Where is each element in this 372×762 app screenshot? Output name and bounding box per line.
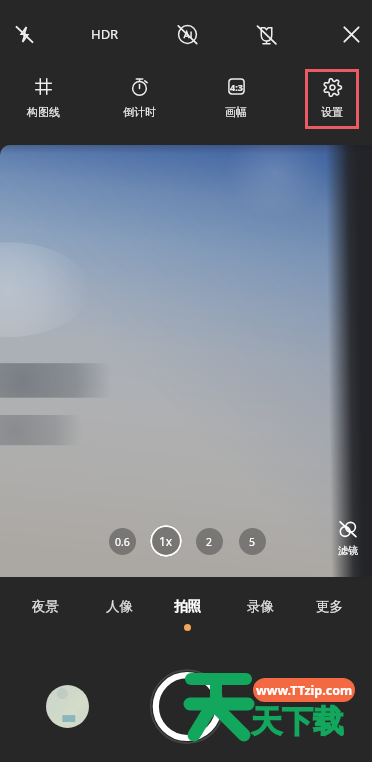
staticText: 更多 [316, 598, 343, 615]
staticText: 夜景 [32, 598, 59, 615]
staticText: 1x [159, 533, 173, 549]
button[interactable]: AI scene off [166, 13, 208, 55]
button[interactable]: 更多 [295, 590, 363, 636]
button[interactable]: Night mode off [245, 13, 287, 55]
button[interactable]: 1x [150, 525, 182, 557]
staticText: 4:3 [230, 81, 243, 93]
button[interactable]: 人像 [85, 590, 153, 636]
staticText: 2 [206, 535, 213, 549]
button[interactable]: Close [330, 13, 372, 55]
button[interactable]: 设置 [305, 69, 359, 129]
staticText: 构图线 [27, 105, 60, 119]
button[interactable]: HDR [75, 18, 135, 50]
button[interactable]: Gallery [46, 685, 89, 728]
staticText: 0.6 [115, 535, 130, 549]
staticText: www.TTzip.com [256, 682, 353, 699]
staticText: 滤镜 [338, 544, 358, 557]
staticText: 设置 [321, 105, 343, 119]
staticText: 倒计时 [123, 105, 156, 119]
staticText: 画幅 [225, 105, 247, 119]
button[interactable]: 构图线 [13, 72, 73, 122]
button[interactable]: 0.6 [109, 528, 136, 555]
button[interactable]: 4:3 [206, 72, 266, 122]
staticText: 天下载 [251, 702, 344, 740]
staticText: HDR [91, 25, 119, 43]
button[interactable]: 5 [239, 528, 266, 555]
button[interactable]: 夜景 [11, 590, 79, 636]
staticText: 录像 [247, 598, 274, 615]
button[interactable]: 拍照 [153, 590, 221, 636]
button[interactable]: 滤镜 [325, 520, 371, 562]
staticText: 5 [249, 535, 256, 549]
button[interactable]: 录像 [226, 590, 294, 636]
button[interactable]: 2 [196, 528, 223, 555]
button[interactable]: 倒计时 [109, 72, 169, 122]
staticText: 人像 [106, 598, 133, 615]
staticText: 拍照 [174, 598, 201, 615]
button[interactable]: Flash off [3, 13, 45, 55]
button[interactable]: Shutter [149, 668, 225, 744]
